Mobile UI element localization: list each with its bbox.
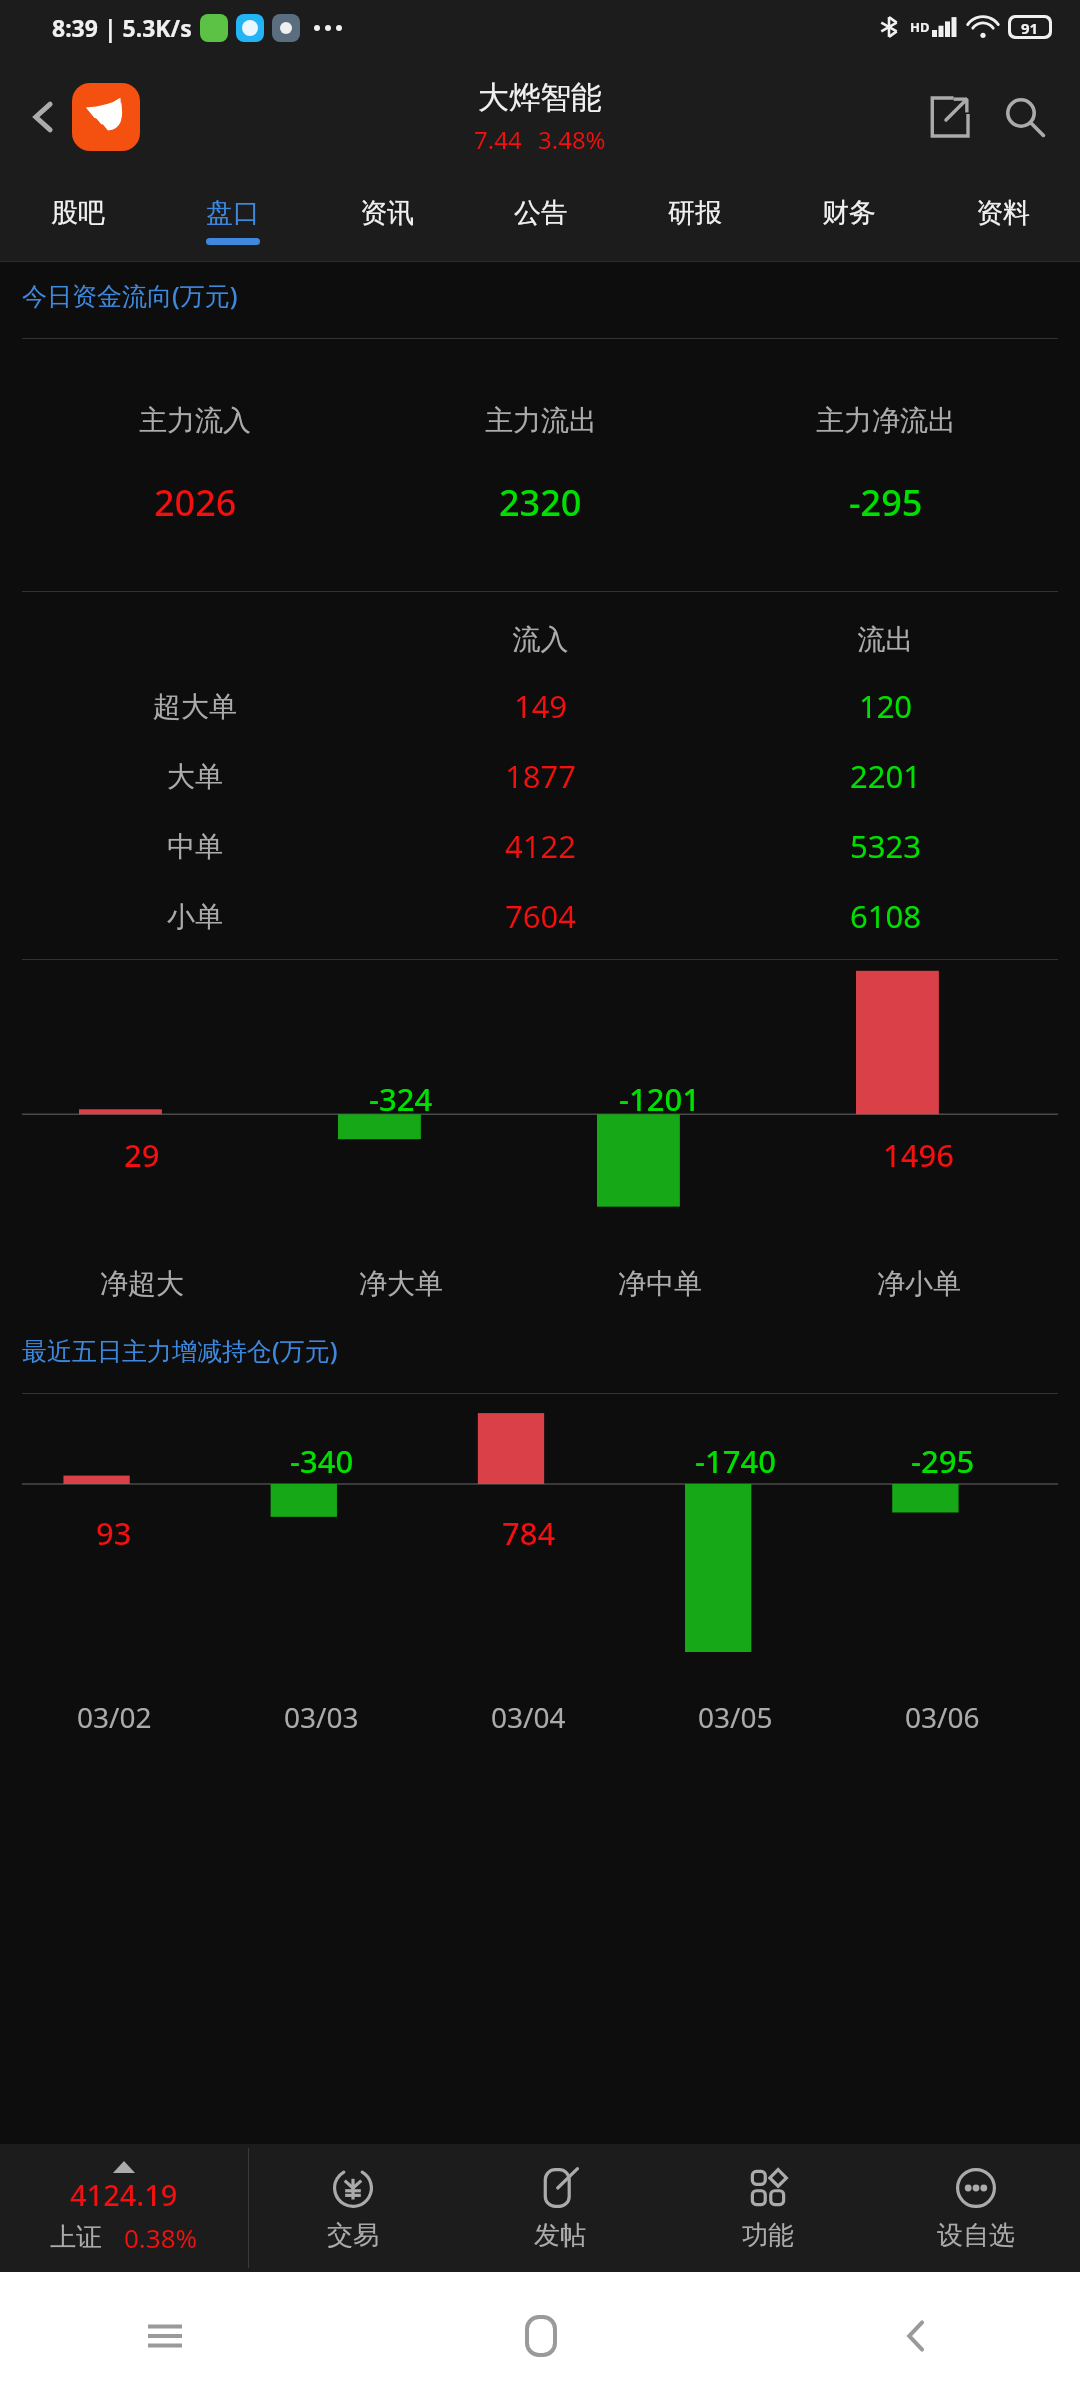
button[interactable]: Share xyxy=(918,86,980,148)
staticText: 净超大 xyxy=(100,1266,184,1301)
staticText: 公告 xyxy=(514,196,568,230)
button[interactable]: 资讯 xyxy=(310,179,464,262)
staticText: 设自选 xyxy=(937,2219,1015,2252)
staticText: -295 xyxy=(849,478,923,527)
staticText: 5323 xyxy=(713,825,1058,867)
staticText: 今日资金流向(万元) xyxy=(22,278,238,312)
staticText: 784 xyxy=(502,1512,556,1554)
button[interactable]: 设自选 xyxy=(872,2144,1080,2272)
staticText: 资料 xyxy=(976,196,1030,230)
staticText: 主力净流出 xyxy=(816,403,956,438)
staticText: 03/02 xyxy=(77,1698,152,1736)
staticText: 149 xyxy=(368,685,713,727)
button[interactable]: 功能 xyxy=(664,2144,872,2272)
staticText: 91 xyxy=(1021,18,1039,36)
staticText: 小单 xyxy=(22,899,368,934)
staticText: 93 xyxy=(96,1512,132,1554)
staticText: 03/06 xyxy=(905,1698,980,1736)
staticText: 3.48% xyxy=(538,123,606,156)
staticText: 4122 xyxy=(368,825,713,867)
button[interactable]: 研报 xyxy=(618,179,772,262)
staticText: -340 xyxy=(290,1440,354,1482)
button[interactable]: Recents xyxy=(130,2301,200,2371)
staticText: 股吧 xyxy=(51,196,105,230)
button[interactable]: 公告 xyxy=(464,179,618,262)
button[interactable]: Home xyxy=(506,2301,576,2371)
staticText: 大单 xyxy=(22,759,368,794)
button[interactable]: 盘口 xyxy=(155,179,310,262)
button[interactable]: 交易 xyxy=(249,2144,456,2272)
staticText: -1740 xyxy=(695,1440,776,1482)
staticText: 4124.19 xyxy=(70,2175,178,2214)
staticText: 8:39 | 5.3K/s xyxy=(52,12,192,43)
staticText: 最近五日主力增减持仓(万元) xyxy=(22,1333,338,1367)
staticText: 29 xyxy=(124,1134,160,1176)
staticText: 大烨智能 xyxy=(478,78,602,117)
staticText: HD xyxy=(910,18,930,36)
button[interactable]: 财务 xyxy=(772,179,926,262)
staticText: 流入 xyxy=(368,622,713,657)
staticText: 2320 xyxy=(499,478,582,527)
staticText: 中单 xyxy=(22,829,368,864)
staticText: -295 xyxy=(911,1440,975,1482)
staticText: 发帖 xyxy=(534,2219,586,2252)
staticText: 2026 xyxy=(154,478,237,527)
button[interactable]: 股吧 xyxy=(0,179,155,262)
staticText: 超大单 xyxy=(22,689,368,724)
staticText: 交易 xyxy=(327,2219,379,2252)
staticText: 1496 xyxy=(883,1134,954,1176)
button[interactable]: Back xyxy=(14,87,74,147)
staticText: 6108 xyxy=(713,895,1058,937)
button[interactable]: 4124.19 xyxy=(0,2144,248,2272)
staticText: 资讯 xyxy=(360,196,414,230)
staticText: 主力流出 xyxy=(485,403,597,438)
staticText: 盘口 xyxy=(206,196,260,230)
button[interactable]: Back xyxy=(881,2301,951,2371)
staticText: 7.44 xyxy=(474,123,522,156)
button[interactable]: 发帖 xyxy=(456,2144,664,2272)
staticText: 0.38% xyxy=(124,2220,198,2255)
staticText: -324 xyxy=(369,1078,433,1120)
staticText: 7604 xyxy=(368,895,713,937)
button[interactable]: App logo xyxy=(72,83,140,151)
staticText: 净小单 xyxy=(877,1266,961,1301)
staticText: 2201 xyxy=(713,755,1058,797)
staticText: 上证 xyxy=(50,2221,102,2254)
button[interactable]: Search xyxy=(994,86,1056,148)
staticText: 净大单 xyxy=(359,1266,443,1301)
staticText: 03/03 xyxy=(284,1698,359,1736)
staticText: 120 xyxy=(713,685,1058,727)
staticText: 流出 xyxy=(713,622,1058,657)
staticText: 主力流入 xyxy=(139,403,251,438)
staticText: 03/05 xyxy=(698,1698,773,1736)
staticText: 净中单 xyxy=(618,1266,702,1301)
staticText: 03/04 xyxy=(491,1698,566,1736)
staticText: 财务 xyxy=(822,196,876,230)
staticText: -1201 xyxy=(619,1078,700,1120)
staticText: 研报 xyxy=(668,196,722,230)
staticText: 功能 xyxy=(742,2219,794,2252)
button[interactable]: 资料 xyxy=(926,179,1080,262)
staticText: 1877 xyxy=(368,755,713,797)
